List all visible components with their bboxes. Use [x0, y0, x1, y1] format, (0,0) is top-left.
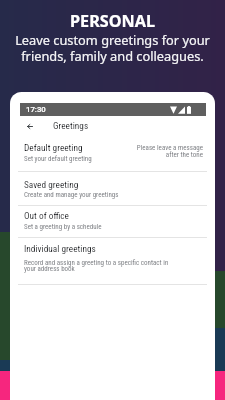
staticText: your address book — [24, 265, 75, 273]
button[interactable]: Back — [19, 115, 41, 137]
staticText: PERSONAL — [0, 10, 225, 32]
staticText: after the tone — [10, 151, 203, 159]
button[interactable] — [10, 143, 215, 172]
staticText: Please leave a message — [10, 144, 203, 152]
staticText: Set your default greeting — [24, 155, 92, 163]
staticText: Greetings — [53, 120, 89, 131]
staticText: Set a greeting by a schedule — [24, 223, 102, 231]
staticText: Record and assign a greeting to a specif… — [24, 259, 169, 267]
staticText: Individual greetings — [24, 243, 96, 254]
staticText: Create and manage your greetings — [24, 191, 119, 199]
staticText: 17:30 — [26, 105, 46, 114]
button[interactable] — [10, 207, 215, 238]
staticText: Saved greeting — [24, 179, 79, 190]
staticText: Default greeting — [24, 142, 83, 153]
staticText: Leave custom greetings for your friends,… — [0, 31, 225, 65]
button[interactable] — [10, 173, 215, 206]
button[interactable] — [10, 239, 215, 285]
staticText: Out of office — [24, 210, 69, 221]
